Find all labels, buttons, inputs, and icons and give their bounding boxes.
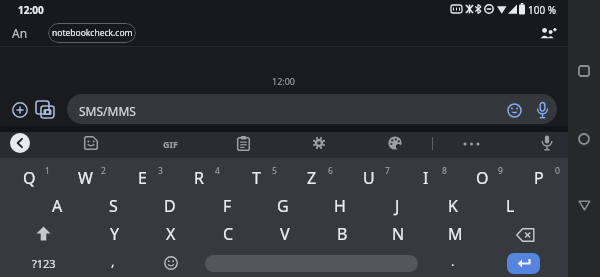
button[interactable]: U [342, 164, 396, 192]
button[interactable]: notebookcheck.com [48, 23, 136, 43]
button[interactable]: P [512, 164, 566, 192]
button[interactable] [36, 101, 56, 119]
button[interactable]: C [201, 220, 255, 248]
staticText: H [334, 195, 346, 217]
staticText: Z [307, 167, 317, 189]
button[interactable] [541, 135, 553, 151]
button[interactable] [540, 27, 557, 39]
staticText: , [111, 252, 115, 270]
staticText: T [252, 167, 261, 189]
staticText: A [52, 195, 63, 217]
button[interactable]: M [428, 220, 482, 248]
staticText: I [423, 167, 429, 189]
button[interactable] [84, 136, 98, 150]
staticText: . [451, 252, 455, 270]
button[interactable] [507, 253, 540, 274]
staticText: B [337, 223, 348, 245]
staticText: GIF [163, 138, 178, 150]
staticText: K [448, 195, 458, 217]
button[interactable]: N [371, 220, 425, 248]
staticText: 8 [442, 165, 447, 177]
button[interactable] [463, 142, 480, 146]
staticText: Y [110, 223, 120, 245]
staticText: N [392, 223, 405, 245]
button[interactable]: , [93, 248, 133, 274]
staticText: D [164, 195, 176, 217]
button[interactable]: S [86, 192, 140, 220]
staticText: W [78, 167, 93, 189]
staticText: L [506, 195, 515, 217]
staticText: 7 [385, 165, 390, 177]
button[interactable]: L [483, 192, 537, 220]
button[interactable] [12, 102, 28, 118]
staticText: 100 % [528, 3, 557, 17]
staticText: J [395, 195, 400, 217]
button[interactable]: GIF [150, 133, 190, 155]
staticText: C [223, 223, 234, 245]
staticText: 0 [555, 165, 560, 177]
button[interactable]: G [256, 192, 310, 220]
button[interactable]: D [143, 192, 197, 220]
button[interactable]: R [172, 164, 226, 192]
staticText: 12:00 [272, 75, 296, 87]
button[interactable]: E [115, 164, 169, 192]
staticText: R [194, 167, 204, 189]
staticText: G [277, 195, 289, 217]
button[interactable] [578, 133, 590, 145]
button[interactable]: O [455, 164, 509, 192]
button[interactable] [516, 228, 535, 242]
staticText: E [138, 167, 147, 189]
staticText: P [534, 167, 544, 189]
staticText: ?123 [32, 256, 56, 271]
button[interactable] [578, 200, 591, 211]
staticText: 4 [215, 165, 220, 177]
button[interactable]: B [315, 220, 369, 248]
staticText: F [223, 195, 232, 217]
button[interactable]: F [200, 192, 254, 220]
button[interactable]: W [58, 164, 112, 192]
button[interactable]: T [229, 164, 283, 192]
staticText: V [280, 223, 290, 245]
staticText: 3 [158, 165, 163, 177]
button[interactable] [578, 65, 590, 77]
button[interactable]: A [30, 192, 84, 220]
button[interactable] [388, 136, 403, 150]
button[interactable] [36, 226, 51, 241]
button[interactable] [312, 136, 326, 150]
staticText: 6 [328, 165, 333, 177]
button[interactable]: Z [285, 164, 339, 192]
staticText: M [448, 223, 463, 245]
staticText: 12:00 [18, 3, 44, 17]
button[interactable]: I [399, 164, 453, 192]
button[interactable] [10, 133, 30, 153]
staticText: SMS/MMS [79, 103, 136, 119]
staticText: 2 [101, 165, 106, 177]
staticText: Q [23, 167, 36, 189]
button[interactable]: V [258, 220, 312, 248]
staticText: S [109, 195, 118, 217]
button[interactable] [536, 102, 549, 119]
staticText: 5 [272, 165, 277, 177]
staticText: 9 [498, 165, 503, 177]
staticText: 1 [45, 165, 50, 177]
button[interactable]: H [313, 192, 367, 220]
button[interactable] [205, 255, 418, 272]
button[interactable]: J [370, 192, 424, 220]
staticText: An [12, 25, 28, 41]
staticText: notebookcheck.com [52, 27, 133, 39]
staticText: X [166, 223, 176, 245]
button[interactable] [507, 103, 522, 118]
button[interactable]: Q [2, 164, 56, 192]
staticText: O [476, 167, 489, 189]
button[interactable]: Y [88, 220, 142, 248]
button[interactable]: K [426, 192, 480, 220]
staticText: U [363, 167, 375, 189]
button[interactable] [237, 136, 250, 151]
button[interactable] [164, 256, 178, 270]
button[interactable]: . [433, 248, 473, 274]
button[interactable]: X [144, 220, 198, 248]
button[interactable]: ?123 [17, 250, 71, 276]
button[interactable] [67, 94, 557, 124]
